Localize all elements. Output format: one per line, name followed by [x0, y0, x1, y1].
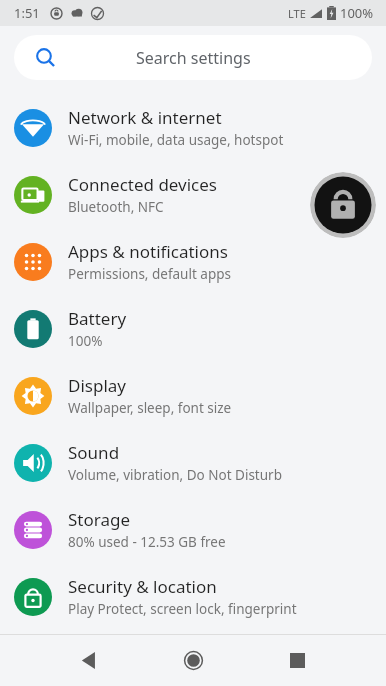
- button[interactable]: Apps & notifications: [0, 228, 386, 295]
- staticText: Storage: [68, 508, 131, 531]
- staticText: 1:51: [14, 4, 40, 22]
- staticText: Play Protect, screen lock, fingerprint: [68, 600, 297, 618]
- button[interactable]: Battery: [0, 295, 386, 362]
- button[interactable]: Connected devices: [0, 161, 386, 228]
- staticText: Battery: [68, 307, 127, 330]
- staticText: Volume, vibration, Do Not Disturb: [68, 466, 282, 484]
- button[interactable]: Network & internet: [0, 94, 386, 161]
- button[interactable]: Lock screen: [310, 172, 376, 238]
- staticText: LTE: [288, 6, 306, 21]
- staticText: Wallpaper, sleep, font size: [68, 399, 232, 417]
- staticText: Sound: [68, 441, 120, 464]
- staticText: Display: [68, 374, 126, 397]
- staticText: 100%: [68, 332, 103, 350]
- staticText: 100%: [340, 4, 374, 22]
- staticText: Network & internet: [68, 106, 222, 129]
- staticText: Apps & notifications: [68, 240, 228, 263]
- button[interactable]: Storage: [0, 496, 386, 563]
- staticText: 80% used - 12.53 GB free: [68, 533, 226, 551]
- staticText: Connected devices: [68, 173, 218, 196]
- button[interactable]: Home: [176, 643, 210, 677]
- staticText: Bluetooth, NFC: [68, 198, 164, 216]
- button[interactable]: Sound: [0, 429, 386, 496]
- button[interactable]: Display: [0, 362, 386, 429]
- button[interactable]: Back: [72, 643, 106, 677]
- staticText: Wi-Fi, mobile, data usage, hotspot: [68, 131, 284, 149]
- button[interactable]: Recent apps: [280, 643, 314, 677]
- staticText: Security & location: [68, 575, 217, 598]
- button[interactable]: Security & location: [0, 563, 386, 630]
- staticText: Search settings: [136, 47, 251, 69]
- button[interactable]: Search settings: [14, 35, 372, 80]
- staticText: Permissions, default apps: [68, 265, 231, 283]
